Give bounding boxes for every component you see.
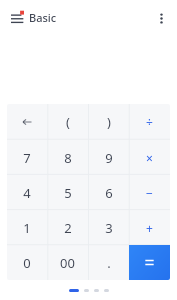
staticText: 6 <box>105 184 113 202</box>
button[interactable]: Backspace <box>7 104 47 140</box>
staticText: Basic <box>29 10 57 25</box>
button[interactable]: 2 <box>47 210 88 245</box>
button[interactable]: . <box>88 245 129 280</box>
button[interactable]: Equals <box>129 245 170 280</box>
button[interactable]: 4 <box>7 175 47 210</box>
staticText: 5 <box>64 184 72 202</box>
button[interactable]: × <box>129 140 170 175</box>
staticText: 8 <box>64 149 72 167</box>
button[interactable]: 0 <box>7 245 47 280</box>
staticText: 7 <box>23 149 31 167</box>
staticText: ( <box>66 113 70 131</box>
button[interactable]: 7 <box>7 140 47 175</box>
button[interactable]: ÷ <box>129 104 170 140</box>
staticText: 4 <box>23 184 31 202</box>
button[interactable]: ) <box>88 104 129 140</box>
button[interactable]: ( <box>47 104 88 140</box>
button[interactable]: 5 <box>47 175 88 210</box>
staticText: 9 <box>105 149 113 167</box>
staticText: 00 <box>60 254 75 272</box>
button[interactable]: 3 <box>88 210 129 245</box>
staticText: 3 <box>105 219 113 237</box>
button[interactable]: − <box>129 175 170 210</box>
staticText: − <box>146 185 153 201</box>
button[interactable]: 6 <box>88 175 129 210</box>
staticText: + <box>146 220 153 236</box>
button[interactable]: 8 <box>47 140 88 175</box>
staticText: 2 <box>64 219 72 237</box>
staticText: ÷ <box>146 114 153 130</box>
staticText: ) <box>107 113 111 131</box>
button[interactable]: 1 <box>7 210 47 245</box>
staticText: × <box>146 150 153 166</box>
button[interactable]: + <box>129 210 170 245</box>
button[interactable]: 00 <box>47 245 88 280</box>
button[interactable]: Menu <box>6 7 28 29</box>
button[interactable]: 9 <box>88 140 129 175</box>
staticText: 1 <box>23 219 31 237</box>
staticText: . <box>107 254 111 272</box>
staticText: 0 <box>23 254 31 272</box>
button[interactable]: More options <box>150 7 172 29</box>
